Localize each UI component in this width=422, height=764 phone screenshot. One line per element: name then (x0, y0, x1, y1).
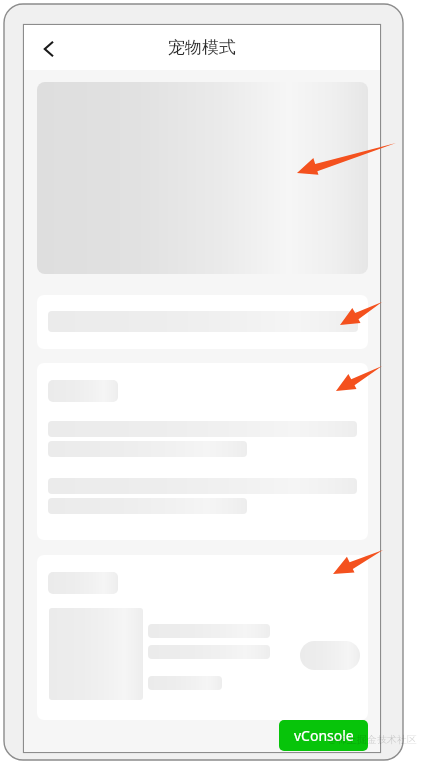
staticText: 宠物模式 (168, 37, 236, 58)
staticText: vConsole (294, 726, 354, 745)
button[interactable]: Loading details section (37, 363, 368, 540)
button[interactable]: Loading section (37, 295, 368, 349)
staticText: @稀土掘金技术社区 (328, 732, 417, 746)
button[interactable]: Loading banner (37, 82, 368, 274)
button[interactable]: Back (30, 30, 68, 68)
button[interactable]: Loading item section (37, 555, 368, 720)
button[interactable]: vConsole (279, 720, 368, 751)
